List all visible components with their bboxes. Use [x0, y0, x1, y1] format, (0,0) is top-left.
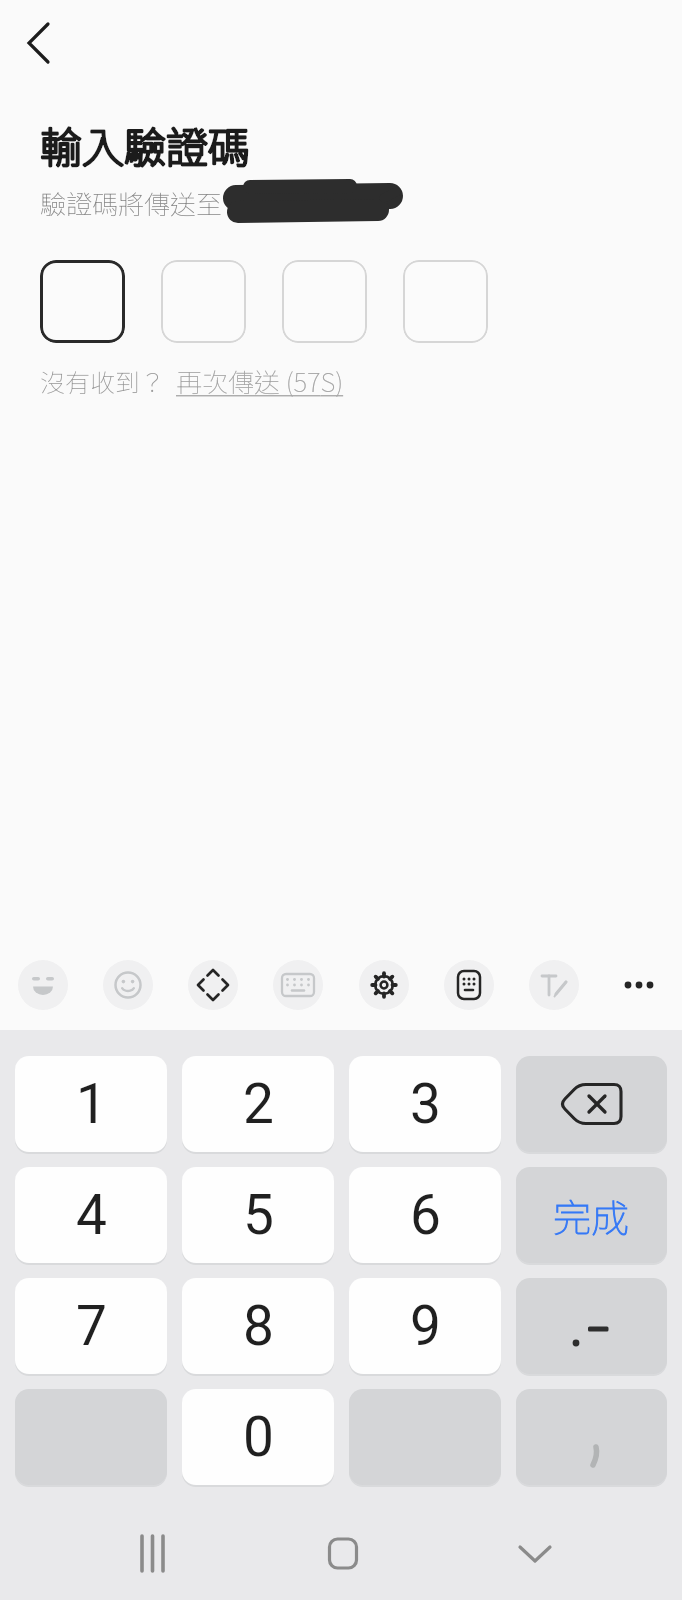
staticText: 輸入驗證碼	[40, 114, 251, 175]
staticText: 輸入驗證碼	[40, 114, 251, 175]
staticText: 驗證碼將傳送至	[40, 184, 223, 222]
staticText: 6	[410, 1183, 441, 1247]
button[interactable]	[516, 1278, 667, 1374]
button[interactable]	[273, 960, 323, 1010]
button[interactable]: 6	[349, 1167, 501, 1263]
button[interactable]	[359, 960, 409, 1010]
button[interactable]: 2	[182, 1056, 334, 1152]
button[interactable]: 3	[349, 1056, 501, 1152]
button[interactable]	[18, 960, 68, 1010]
staticText: 4	[76, 1183, 107, 1247]
button[interactable]	[161, 260, 246, 343]
staticText: 7	[76, 1294, 107, 1358]
button[interactable]	[282, 260, 367, 343]
button[interactable]: 7	[15, 1278, 167, 1374]
button[interactable]	[103, 960, 153, 1010]
button[interactable]: 0	[182, 1389, 334, 1485]
button[interactable]	[132, 1532, 174, 1574]
button[interactable]: 1	[15, 1056, 167, 1152]
staticText: 8	[243, 1294, 274, 1358]
staticText: 5	[243, 1183, 274, 1247]
staticText: 2	[243, 1072, 274, 1136]
staticText: 1	[76, 1072, 107, 1136]
button[interactable]	[516, 1056, 667, 1152]
button[interactable]	[529, 960, 579, 1010]
button[interactable]: 4	[15, 1167, 167, 1263]
button[interactable]	[403, 260, 488, 343]
button[interactable]	[322, 1532, 364, 1574]
button[interactable]: 5	[182, 1167, 334, 1263]
staticText: 3	[410, 1072, 441, 1136]
button[interactable]: 完成	[516, 1167, 667, 1263]
button[interactable]	[514, 1532, 556, 1574]
button[interactable]	[40, 260, 125, 343]
button[interactable]	[188, 960, 238, 1010]
button[interactable]	[516, 1389, 667, 1485]
button[interactable]: 再次傳送 (57S)	[176, 362, 344, 400]
staticText: 沒有收到？	[40, 363, 166, 399]
button[interactable]	[12, 14, 68, 70]
button[interactable]	[444, 960, 494, 1010]
staticText: 0	[243, 1405, 274, 1469]
staticText: 9	[410, 1294, 441, 1358]
staticText: 完成	[553, 1188, 630, 1243]
staticText: 完成	[553, 1188, 630, 1243]
button[interactable]	[614, 960, 664, 1010]
button[interactable]: 8	[182, 1278, 334, 1374]
button[interactable]: 9	[349, 1278, 501, 1374]
